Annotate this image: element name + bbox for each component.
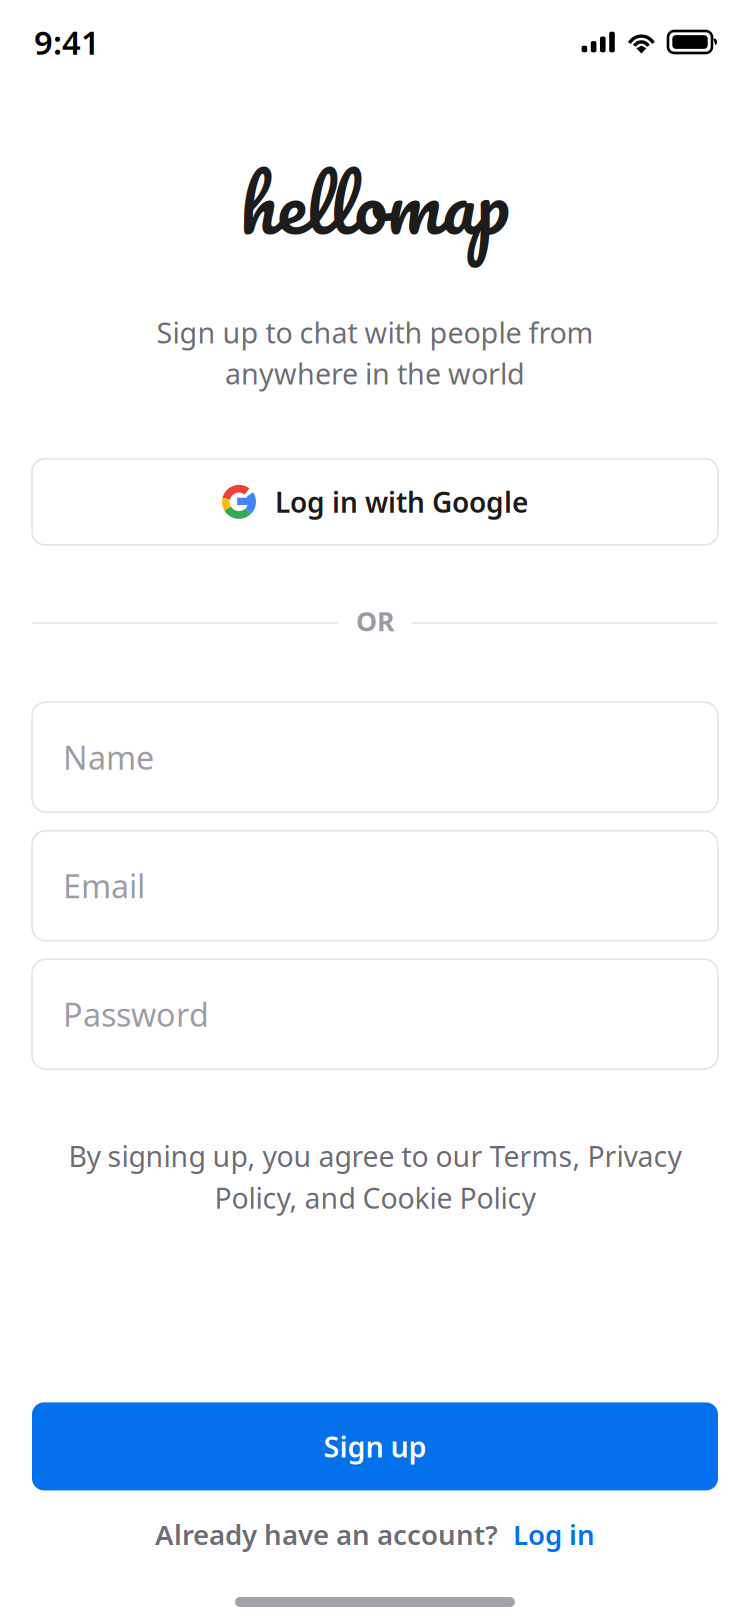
staticText: 9:41: [34, 20, 100, 64]
staticText: Log in: [513, 1515, 595, 1553]
button[interactable]: Already have an account?: [155, 1515, 595, 1553]
staticText: Log in with Google: [275, 483, 528, 521]
staticText: Sign up: [323, 1427, 426, 1466]
staticText: Sign up to chat with people from: [156, 313, 593, 352]
button[interactable]: Sign up: [32, 1402, 718, 1490]
staticText: By signing up, you agree to our Terms, P…: [68, 1137, 681, 1175]
button[interactable]: Password: [32, 959, 718, 1069]
staticText: OR: [356, 603, 394, 639]
staticText: Already have an account?: [155, 1515, 498, 1553]
staticText: Policy, and Cookie Policy: [214, 1178, 535, 1217]
button[interactable]: Log in with Google: [32, 459, 718, 545]
button[interactable]: Email: [32, 831, 718, 941]
staticText: Email: [63, 864, 145, 908]
button[interactable]: Name: [32, 702, 718, 812]
staticText: hellomap: [240, 139, 510, 268]
staticText: anywhere in the world: [225, 354, 525, 393]
staticText: Password: [63, 992, 209, 1036]
staticText: Name: [63, 735, 154, 779]
